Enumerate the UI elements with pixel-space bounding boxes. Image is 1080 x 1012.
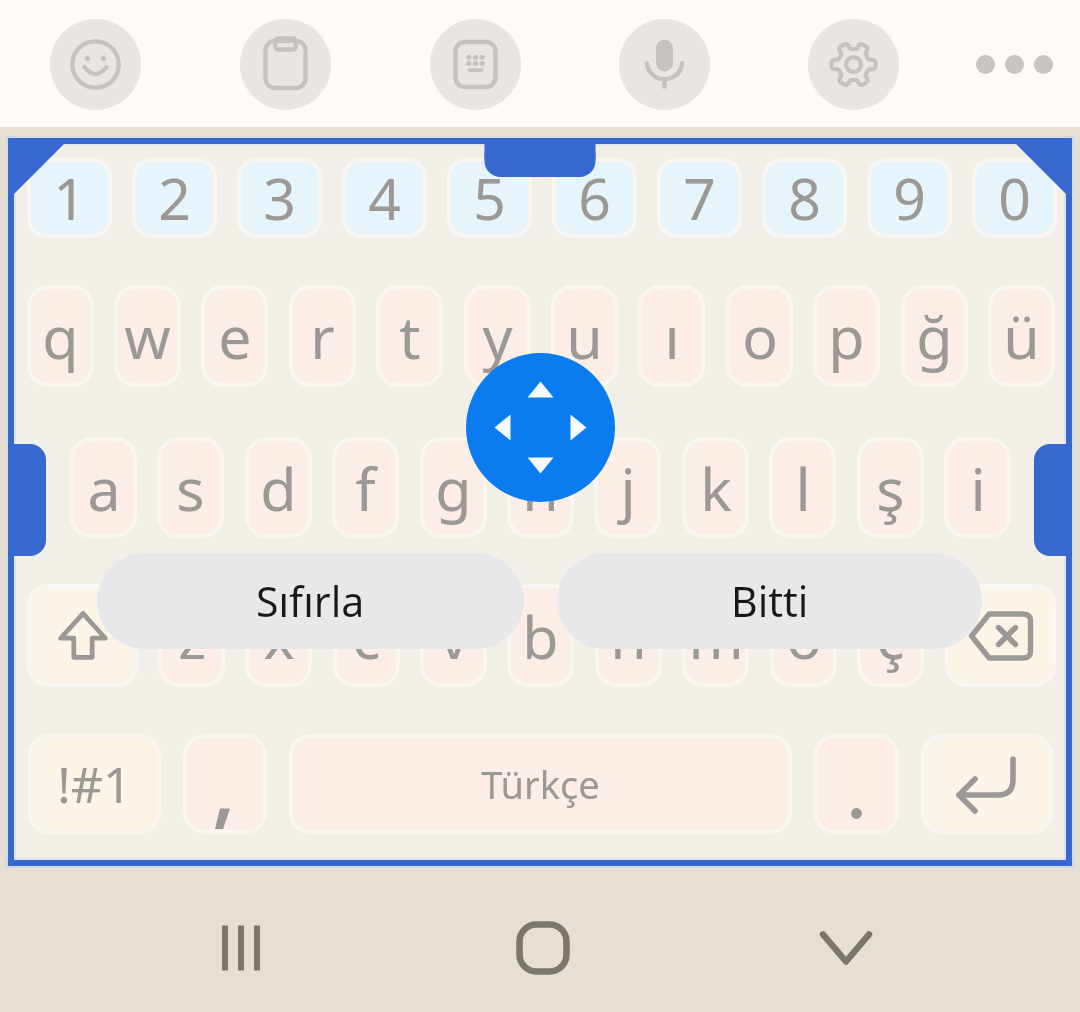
button[interactable]: Recents bbox=[166, 866, 316, 1012]
staticText: j bbox=[620, 448, 636, 528]
button[interactable]: z bbox=[158, 584, 225, 687]
button[interactable]: c bbox=[333, 584, 400, 687]
button[interactable]: 5 bbox=[447, 158, 532, 238]
button[interactable]: 9 bbox=[867, 158, 952, 238]
staticText: b bbox=[522, 596, 559, 676]
button[interactable]: Settings bbox=[808, 19, 899, 110]
button[interactable]: r bbox=[289, 285, 356, 387]
button[interactable]: b bbox=[507, 584, 574, 687]
staticText: e bbox=[218, 296, 252, 376]
staticText: l bbox=[795, 448, 811, 528]
button[interactable]: u bbox=[551, 285, 618, 387]
staticText: f bbox=[355, 448, 376, 528]
button[interactable]: o bbox=[726, 285, 793, 387]
button[interactable]: a bbox=[70, 437, 137, 538]
staticText: r bbox=[310, 296, 335, 376]
staticText: a bbox=[87, 448, 121, 528]
button[interactable]: Comma bbox=[183, 734, 267, 834]
button[interactable]: 7 bbox=[657, 158, 742, 238]
button[interactable]: x bbox=[245, 584, 312, 687]
staticText: w bbox=[124, 296, 171, 376]
staticText: 6 bbox=[578, 159, 611, 237]
button[interactable]: More options bbox=[969, 19, 1060, 110]
button[interactable]: t bbox=[376, 285, 443, 387]
button[interactable]: Hide keyboard bbox=[771, 866, 921, 1012]
staticText: c bbox=[352, 596, 381, 676]
button[interactable]: p bbox=[813, 285, 880, 387]
button[interactable]: ı bbox=[638, 285, 705, 387]
button[interactable]: Clipboard bbox=[240, 19, 331, 110]
button[interactable]: 8 bbox=[762, 158, 847, 238]
button[interactable]: Türkçe bbox=[289, 734, 792, 834]
button[interactable]: 2 bbox=[132, 158, 217, 238]
button[interactable]: i bbox=[944, 437, 1011, 538]
staticText: 9 bbox=[893, 159, 926, 237]
button[interactable]: l bbox=[769, 437, 836, 538]
staticText: 7 bbox=[683, 159, 716, 237]
button[interactable]: ç bbox=[857, 584, 924, 687]
staticText: o bbox=[742, 296, 778, 376]
staticText: q bbox=[42, 296, 79, 376]
staticText: m bbox=[688, 596, 744, 676]
button[interactable]: ğ bbox=[901, 285, 968, 387]
staticText: v bbox=[439, 596, 469, 676]
button[interactable]: 3 bbox=[237, 158, 322, 238]
staticText: 4 bbox=[368, 159, 401, 237]
button[interactable]: Shift bbox=[27, 584, 138, 687]
button[interactable]: 1 bbox=[27, 158, 112, 238]
staticText: z bbox=[178, 596, 206, 676]
button[interactable]: ö bbox=[770, 584, 837, 687]
button[interactable]: !#1 bbox=[28, 734, 161, 834]
staticText: !#1 bbox=[57, 750, 132, 818]
staticText: ç bbox=[876, 596, 905, 676]
staticText: Bitti bbox=[731, 573, 809, 629]
staticText: Türkçe bbox=[481, 758, 600, 810]
button[interactable]: Voice input bbox=[619, 19, 710, 110]
button[interactable]: n bbox=[595, 584, 662, 687]
staticText: u bbox=[566, 296, 603, 376]
button[interactable]: Sıfırla bbox=[97, 553, 524, 649]
button[interactable]: Period bbox=[814, 734, 899, 834]
staticText: p bbox=[828, 296, 865, 376]
button[interactable]: q bbox=[27, 285, 94, 387]
button[interactable]: v bbox=[420, 584, 487, 687]
staticText: k bbox=[700, 448, 732, 528]
button[interactable]: k bbox=[682, 437, 749, 538]
button[interactable]: h bbox=[507, 437, 574, 538]
staticText: 3 bbox=[263, 159, 296, 237]
staticText: s bbox=[176, 448, 205, 528]
button[interactable]: j bbox=[594, 437, 661, 538]
staticText: h bbox=[522, 448, 559, 528]
button[interactable]: 0 bbox=[972, 158, 1057, 238]
button[interactable]: Emoji bbox=[50, 19, 141, 110]
staticText: ı bbox=[664, 296, 680, 376]
button[interactable]: w bbox=[114, 285, 181, 387]
button[interactable]: s bbox=[157, 437, 224, 538]
button[interactable]: ü bbox=[988, 285, 1055, 387]
button[interactable]: 6 bbox=[552, 158, 637, 238]
button[interactable]: e bbox=[201, 285, 268, 387]
staticText: 5 bbox=[473, 159, 506, 237]
button[interactable]: Backspace bbox=[945, 584, 1056, 687]
button[interactable]: Keyboard layout bbox=[430, 19, 521, 110]
button[interactable]: d bbox=[245, 437, 312, 538]
staticText: x bbox=[263, 596, 295, 676]
staticText: d bbox=[260, 448, 297, 528]
staticText: 0 bbox=[998, 159, 1031, 237]
staticText: g bbox=[435, 448, 472, 528]
button[interactable]: f bbox=[332, 437, 399, 538]
button[interactable]: Home bbox=[468, 866, 618, 1012]
staticText: 1 bbox=[53, 159, 86, 237]
staticText: ş bbox=[876, 448, 905, 528]
button[interactable]: Bitti bbox=[557, 553, 982, 649]
staticText: 2 bbox=[158, 159, 191, 237]
staticText: ö bbox=[786, 596, 822, 676]
button[interactable]: g bbox=[420, 437, 487, 538]
staticText: n bbox=[610, 596, 647, 676]
button[interactable]: m bbox=[682, 584, 749, 687]
button[interactable]: Enter bbox=[921, 734, 1053, 834]
button[interactable]: y bbox=[464, 285, 531, 387]
button[interactable]: ş bbox=[857, 437, 924, 538]
button[interactable]: Move keyboard bbox=[466, 353, 615, 502]
button[interactable]: 4 bbox=[342, 158, 427, 238]
